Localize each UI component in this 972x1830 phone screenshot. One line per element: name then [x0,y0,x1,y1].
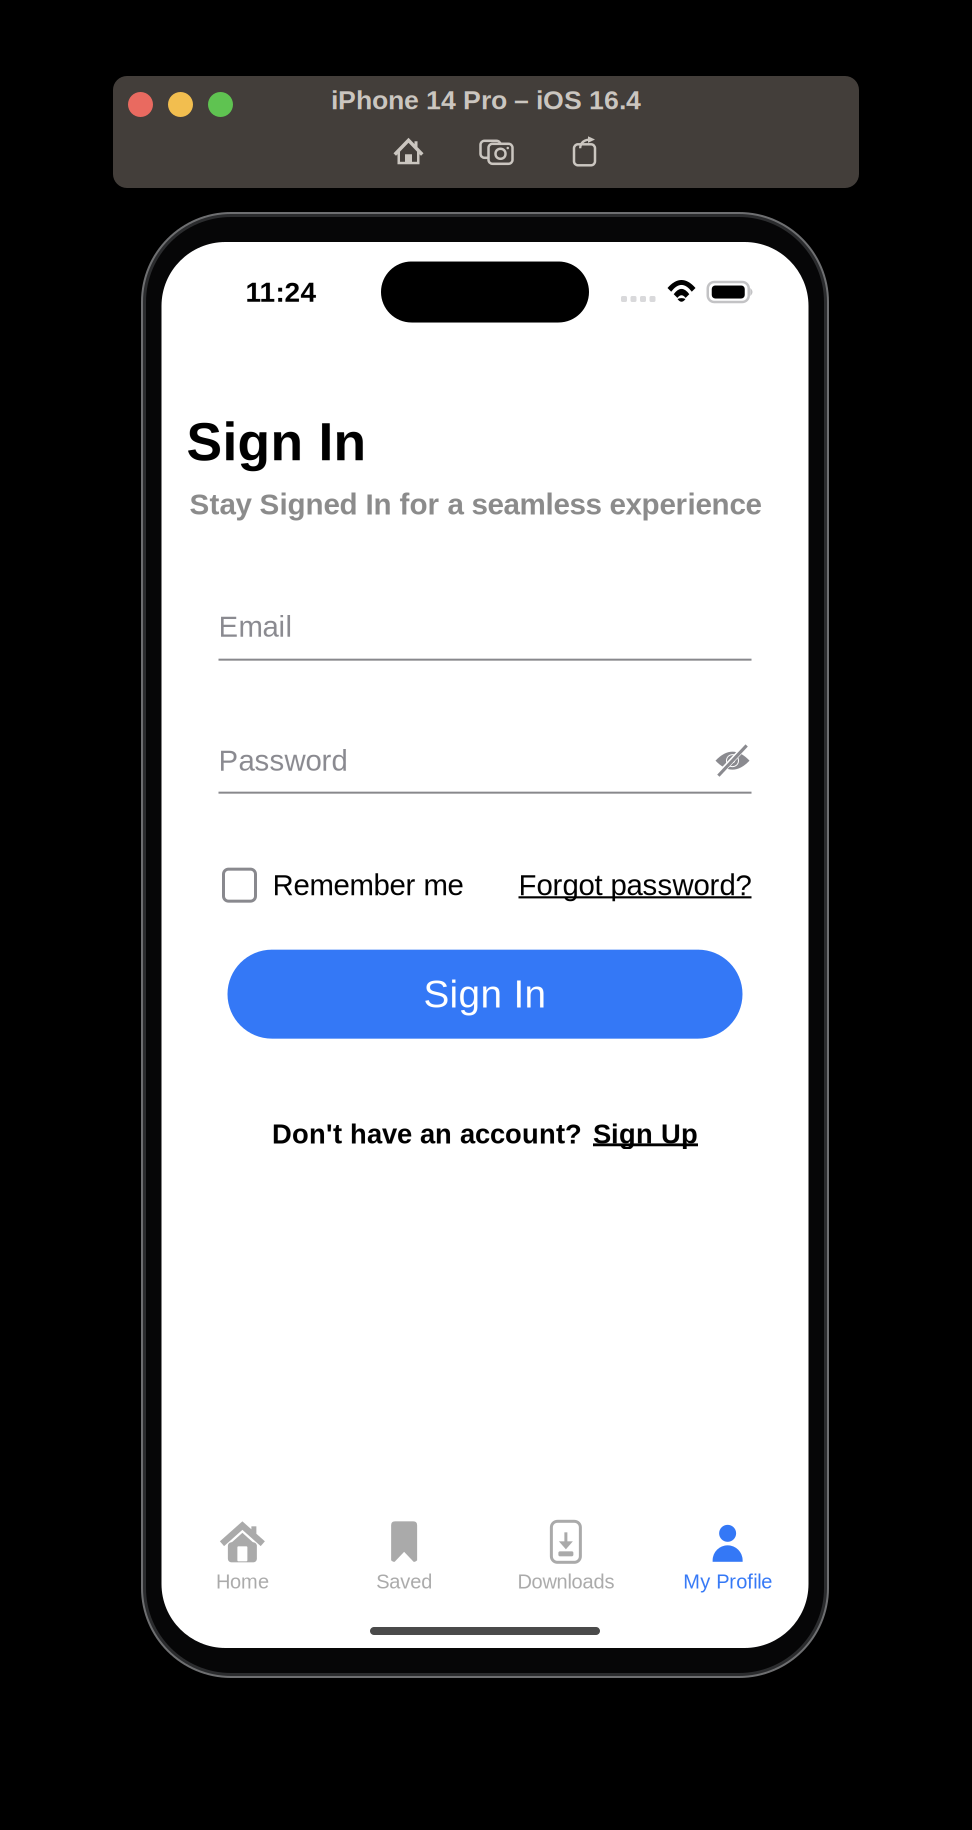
staticText: Sign In [423,973,546,1016]
staticText: Stay Signed In for a seamless experience [189,488,761,521]
staticText: Forgot password? [518,869,751,902]
staticText: Downloads [517,1570,614,1593]
staticText: Don't have an account? [272,1119,582,1149]
button[interactable]: Rotate [569,136,596,165]
button[interactable]: Don't have an account? [272,1119,698,1149]
button[interactable]: Home [393,137,423,164]
button[interactable]: Minimise [168,92,193,117]
button[interactable]: Show password [713,743,751,779]
button[interactable]: Zoom [208,92,233,117]
staticText: Sign In [186,412,366,472]
button[interactable]: Saved [323,1516,485,1596]
staticText: Password [218,744,347,777]
staticText: Remember me [272,869,463,902]
button[interactable]: My Profile [647,1516,809,1596]
button[interactable]: Downloads [485,1516,647,1596]
button[interactable]: Forgot password? [518,869,751,902]
staticText: My Profile [683,1570,772,1593]
staticText: iPhone 14 Pro – iOS 16.4 [331,85,641,115]
button[interactable]: Close [128,92,153,117]
button[interactable]: Screenshot [479,137,513,164]
staticText: Sign Up [593,1119,698,1149]
button[interactable]: Remember me [223,869,463,902]
staticText: Email [218,610,292,643]
staticText: 11:24 [245,276,316,308]
button[interactable]: Home [161,1516,323,1596]
button[interactable]: Sign In [227,950,742,1039]
staticText: Home [216,1570,269,1593]
staticText: Saved [376,1570,432,1593]
